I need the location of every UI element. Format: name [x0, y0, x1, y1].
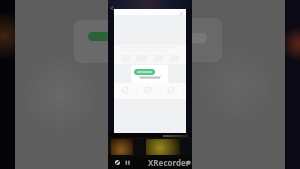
button[interactable]: [131, 65, 168, 83]
button[interactable]: Home: [123, 158, 132, 167]
button[interactable]: Back: [113, 158, 122, 167]
button[interactable]: Close: [177, 9, 186, 18]
staticText: XRecorder: [148, 157, 190, 168]
button[interactable]: Recents: [183, 158, 192, 167]
